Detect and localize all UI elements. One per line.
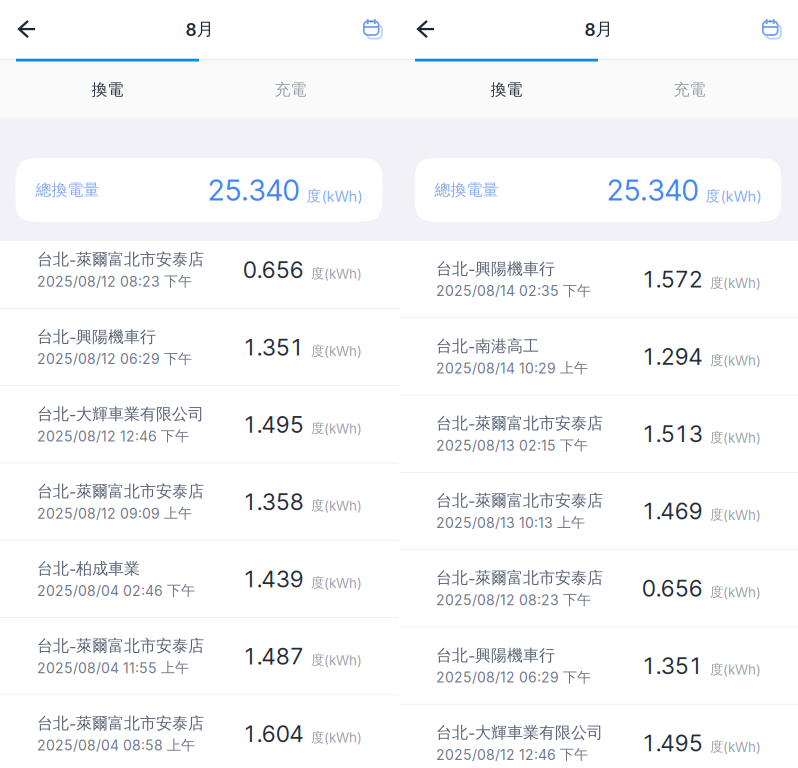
staticText: 度(kWh): [311, 420, 362, 437]
staticText: 2025/08/12 12:46 下午: [37, 427, 189, 445]
staticText: 1.351: [243, 333, 304, 361]
button[interactable]: Back: [399, 0, 453, 58]
staticText: 2025/08/13 10:13 上午: [436, 514, 585, 531]
staticText: 1.351: [642, 652, 703, 679]
staticText: 度(kWh): [710, 661, 761, 678]
button[interactable]: Choose month: [746, 0, 798, 58]
staticText: 1.495: [642, 729, 703, 757]
staticText: 1.513: [642, 420, 703, 447]
button[interactable]: 充電: [598, 61, 781, 118]
staticText: 25.340: [207, 173, 299, 207]
staticText: 2025/08/12 09:09 上午: [37, 504, 192, 522]
staticText: 2025/08/12 06:29 下午: [37, 350, 192, 367]
button[interactable]: 台北-萊爾富北市安泰店: [399, 396, 798, 473]
button[interactable]: 台北-興陽機車行: [0, 309, 399, 386]
staticText: 充電: [274, 80, 306, 100]
staticText: 2025/08/04 08:58 上午: [37, 736, 195, 754]
staticText: 台北-萊爾富北市安泰店: [37, 636, 204, 656]
staticText: 25.340: [606, 173, 698, 207]
staticText: 2025/08/12 08:23 下午: [37, 273, 192, 290]
staticText: 度(kWh): [311, 652, 362, 669]
button[interactable]: 台北-萊爾富北市安泰店: [0, 232, 399, 309]
staticText: 台北-南港高工: [436, 336, 539, 356]
staticText: 度(kWh): [710, 352, 761, 369]
staticText: 度(kWh): [705, 187, 761, 205]
staticText: 1.495: [243, 411, 304, 438]
staticText: 台北-興陽機車行: [436, 259, 555, 279]
staticText: 0.656: [642, 575, 703, 602]
staticText: 度(kWh): [311, 574, 362, 591]
button[interactable]: 換電: [16, 61, 199, 118]
staticText: 台北-萊爾富北市安泰店: [436, 491, 603, 511]
staticText: 2025/08/12 08:23 下午: [436, 591, 591, 609]
staticText: 台北-興陽機車行: [37, 327, 156, 347]
staticText: 度(kWh): [710, 738, 761, 755]
staticText: 1.487: [243, 643, 304, 670]
button[interactable]: 台北-萊爾富北市安泰店: [399, 473, 798, 550]
staticText: 充電: [673, 80, 705, 100]
staticText: 1.294: [642, 343, 703, 370]
staticText: 1.469: [642, 497, 703, 525]
staticText: 度(kWh): [710, 429, 761, 446]
button[interactable]: Choose month: [347, 0, 399, 58]
button[interactable]: Back: [0, 0, 54, 58]
staticText: 度(kWh): [710, 506, 761, 523]
staticText: 台北-萊爾富北市安泰店: [436, 413, 603, 434]
button[interactable]: 台北-柏成車業: [0, 541, 399, 618]
staticText: 0.656: [243, 256, 304, 283]
staticText: 度(kWh): [311, 729, 362, 746]
button[interactable]: 台北-萊爾富北市安泰店: [0, 464, 399, 541]
staticText: 台北-柏成車業: [37, 559, 140, 579]
staticText: 換電: [490, 80, 522, 100]
staticText: 2025/08/14 10:29 上午: [436, 359, 588, 377]
staticText: 台北-興陽機車行: [436, 645, 555, 665]
button[interactable]: 台北-興陽機車行: [399, 627, 798, 705]
staticText: 8月: [584, 18, 612, 40]
staticText: 台北-萊爾富北市安泰店: [37, 481, 204, 502]
staticText: 度(kWh): [306, 187, 362, 205]
staticText: 台北-萊爾富北市安泰店: [37, 713, 204, 733]
staticText: 總換電量: [434, 180, 498, 200]
staticText: 2025/08/12 06:29 下午: [436, 668, 591, 686]
button[interactable]: 換電: [415, 61, 598, 118]
staticText: 1.572: [642, 265, 703, 293]
button[interactable]: 台北-萊爾富北市安泰店: [0, 695, 399, 768]
staticText: 度(kWh): [710, 584, 761, 601]
button[interactable]: 台北-萊爾富北市安泰店: [399, 550, 798, 627]
staticText: 度(kWh): [311, 265, 362, 282]
staticText: 度(kWh): [710, 275, 761, 291]
staticText: 2025/08/12 12:46 下午: [436, 746, 588, 763]
staticText: 1.604: [243, 720, 304, 747]
staticText: 2025/08/04 02:46 下午: [37, 582, 195, 599]
button[interactable]: 台北-大輝車業有限公司: [0, 386, 399, 464]
staticText: 1.439: [243, 565, 304, 593]
staticText: 度(kWh): [311, 343, 362, 359]
staticText: 台北-萊爾富北市安泰店: [37, 249, 204, 270]
staticText: 台北-大輝車業有限公司: [37, 404, 204, 424]
button[interactable]: 台北-興陽機車行: [399, 241, 798, 318]
staticText: 換電: [91, 80, 123, 100]
button[interactable]: 台北-南港高工: [399, 318, 798, 396]
staticText: 2025/08/14 02:35 下午: [436, 282, 591, 299]
staticText: 台北-萊爾富北市安泰店: [436, 568, 603, 588]
staticText: 台北-大輝車業有限公司: [436, 723, 603, 743]
staticText: 2025/08/13 02:15 下午: [436, 436, 588, 454]
staticText: 1.358: [243, 488, 304, 515]
button[interactable]: 台北-大輝車業有限公司: [399, 705, 798, 768]
button[interactable]: 充電: [199, 61, 382, 118]
staticText: 2025/08/04 11:55 上午: [37, 659, 189, 677]
staticText: 8月: [185, 18, 213, 40]
button[interactable]: 台北-萊爾富北市安泰店: [0, 618, 399, 695]
staticText: 總換電量: [35, 180, 99, 200]
staticText: 度(kWh): [311, 497, 362, 514]
